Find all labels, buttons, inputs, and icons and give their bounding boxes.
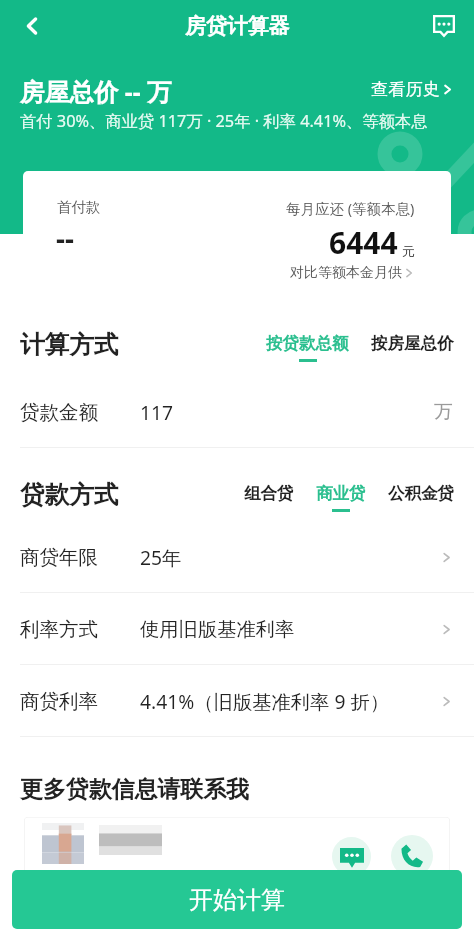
- staticText: 使用旧版基准利率: [140, 617, 295, 641]
- button[interactable]: 对比等额本金月供: [290, 264, 415, 282]
- staticText: 按贷款总额: [266, 333, 349, 354]
- button[interactable]: 商贷年限: [0, 521, 474, 593]
- staticText: 计算方式: [20, 329, 119, 360]
- staticText: 商业贷: [316, 483, 366, 504]
- staticText: 25年: [140, 544, 182, 570]
- staticText: 对比等额本金月供: [290, 264, 402, 282]
- button[interactable]: 按贷款总额: [266, 333, 349, 362]
- staticText: 商贷利率: [20, 689, 98, 714]
- button[interactable]: 查看历史: [371, 78, 454, 100]
- button[interactable]: 客服消息: [418, 0, 470, 52]
- button[interactable]: 组合贷: [244, 483, 294, 509]
- staticText: 房屋总价 -- 万: [20, 75, 172, 109]
- staticText: 公积金贷: [388, 483, 454, 504]
- staticText: 商贷年限: [20, 545, 98, 570]
- staticText: 6444: [329, 222, 398, 263]
- staticText: 更多贷款信息请联系我: [20, 775, 249, 804]
- staticText: 贷款方式: [20, 479, 119, 510]
- button[interactable]: 发消息: [332, 837, 371, 876]
- staticText: 组合贷: [244, 483, 294, 504]
- button[interactable]: 利率方式: [0, 593, 474, 665]
- button[interactable]: 开始计算: [12, 870, 462, 929]
- button[interactable]: 发消息: [24, 817, 450, 892]
- staticText: 开始计算: [189, 885, 285, 915]
- button[interactable]: 打电话: [391, 835, 433, 877]
- staticText: 按房屋总价: [371, 333, 454, 354]
- staticText: 万: [434, 400, 453, 424]
- staticText: --: [56, 219, 74, 257]
- staticText: 首付款: [57, 198, 101, 216]
- staticText: 首付 30%、商业贷 117万 · 25年 · 利率 4.41%、等额本息: [20, 110, 428, 132]
- staticText: 4.41%（旧版基准利率 9 折）: [140, 688, 390, 714]
- button[interactable]: 按房屋总价: [371, 333, 454, 359]
- staticText: 117: [140, 399, 174, 425]
- button[interactable]: 商业贷: [316, 483, 366, 512]
- button[interactable]: 公积金贷: [388, 483, 454, 509]
- button[interactable]: 商贷利率: [0, 665, 474, 737]
- staticText: 每月应还 (等额本息): [286, 198, 415, 218]
- button[interactable]: 贷款金额: [0, 376, 474, 448]
- staticText: 利率方式: [20, 617, 98, 642]
- staticText: 元: [402, 243, 415, 259]
- staticText: 查看历史: [371, 78, 440, 100]
- staticText: 房贷计算器: [185, 13, 290, 39]
- staticText: 贷款金额: [20, 400, 98, 425]
- button[interactable]: 返回: [6, 0, 58, 52]
